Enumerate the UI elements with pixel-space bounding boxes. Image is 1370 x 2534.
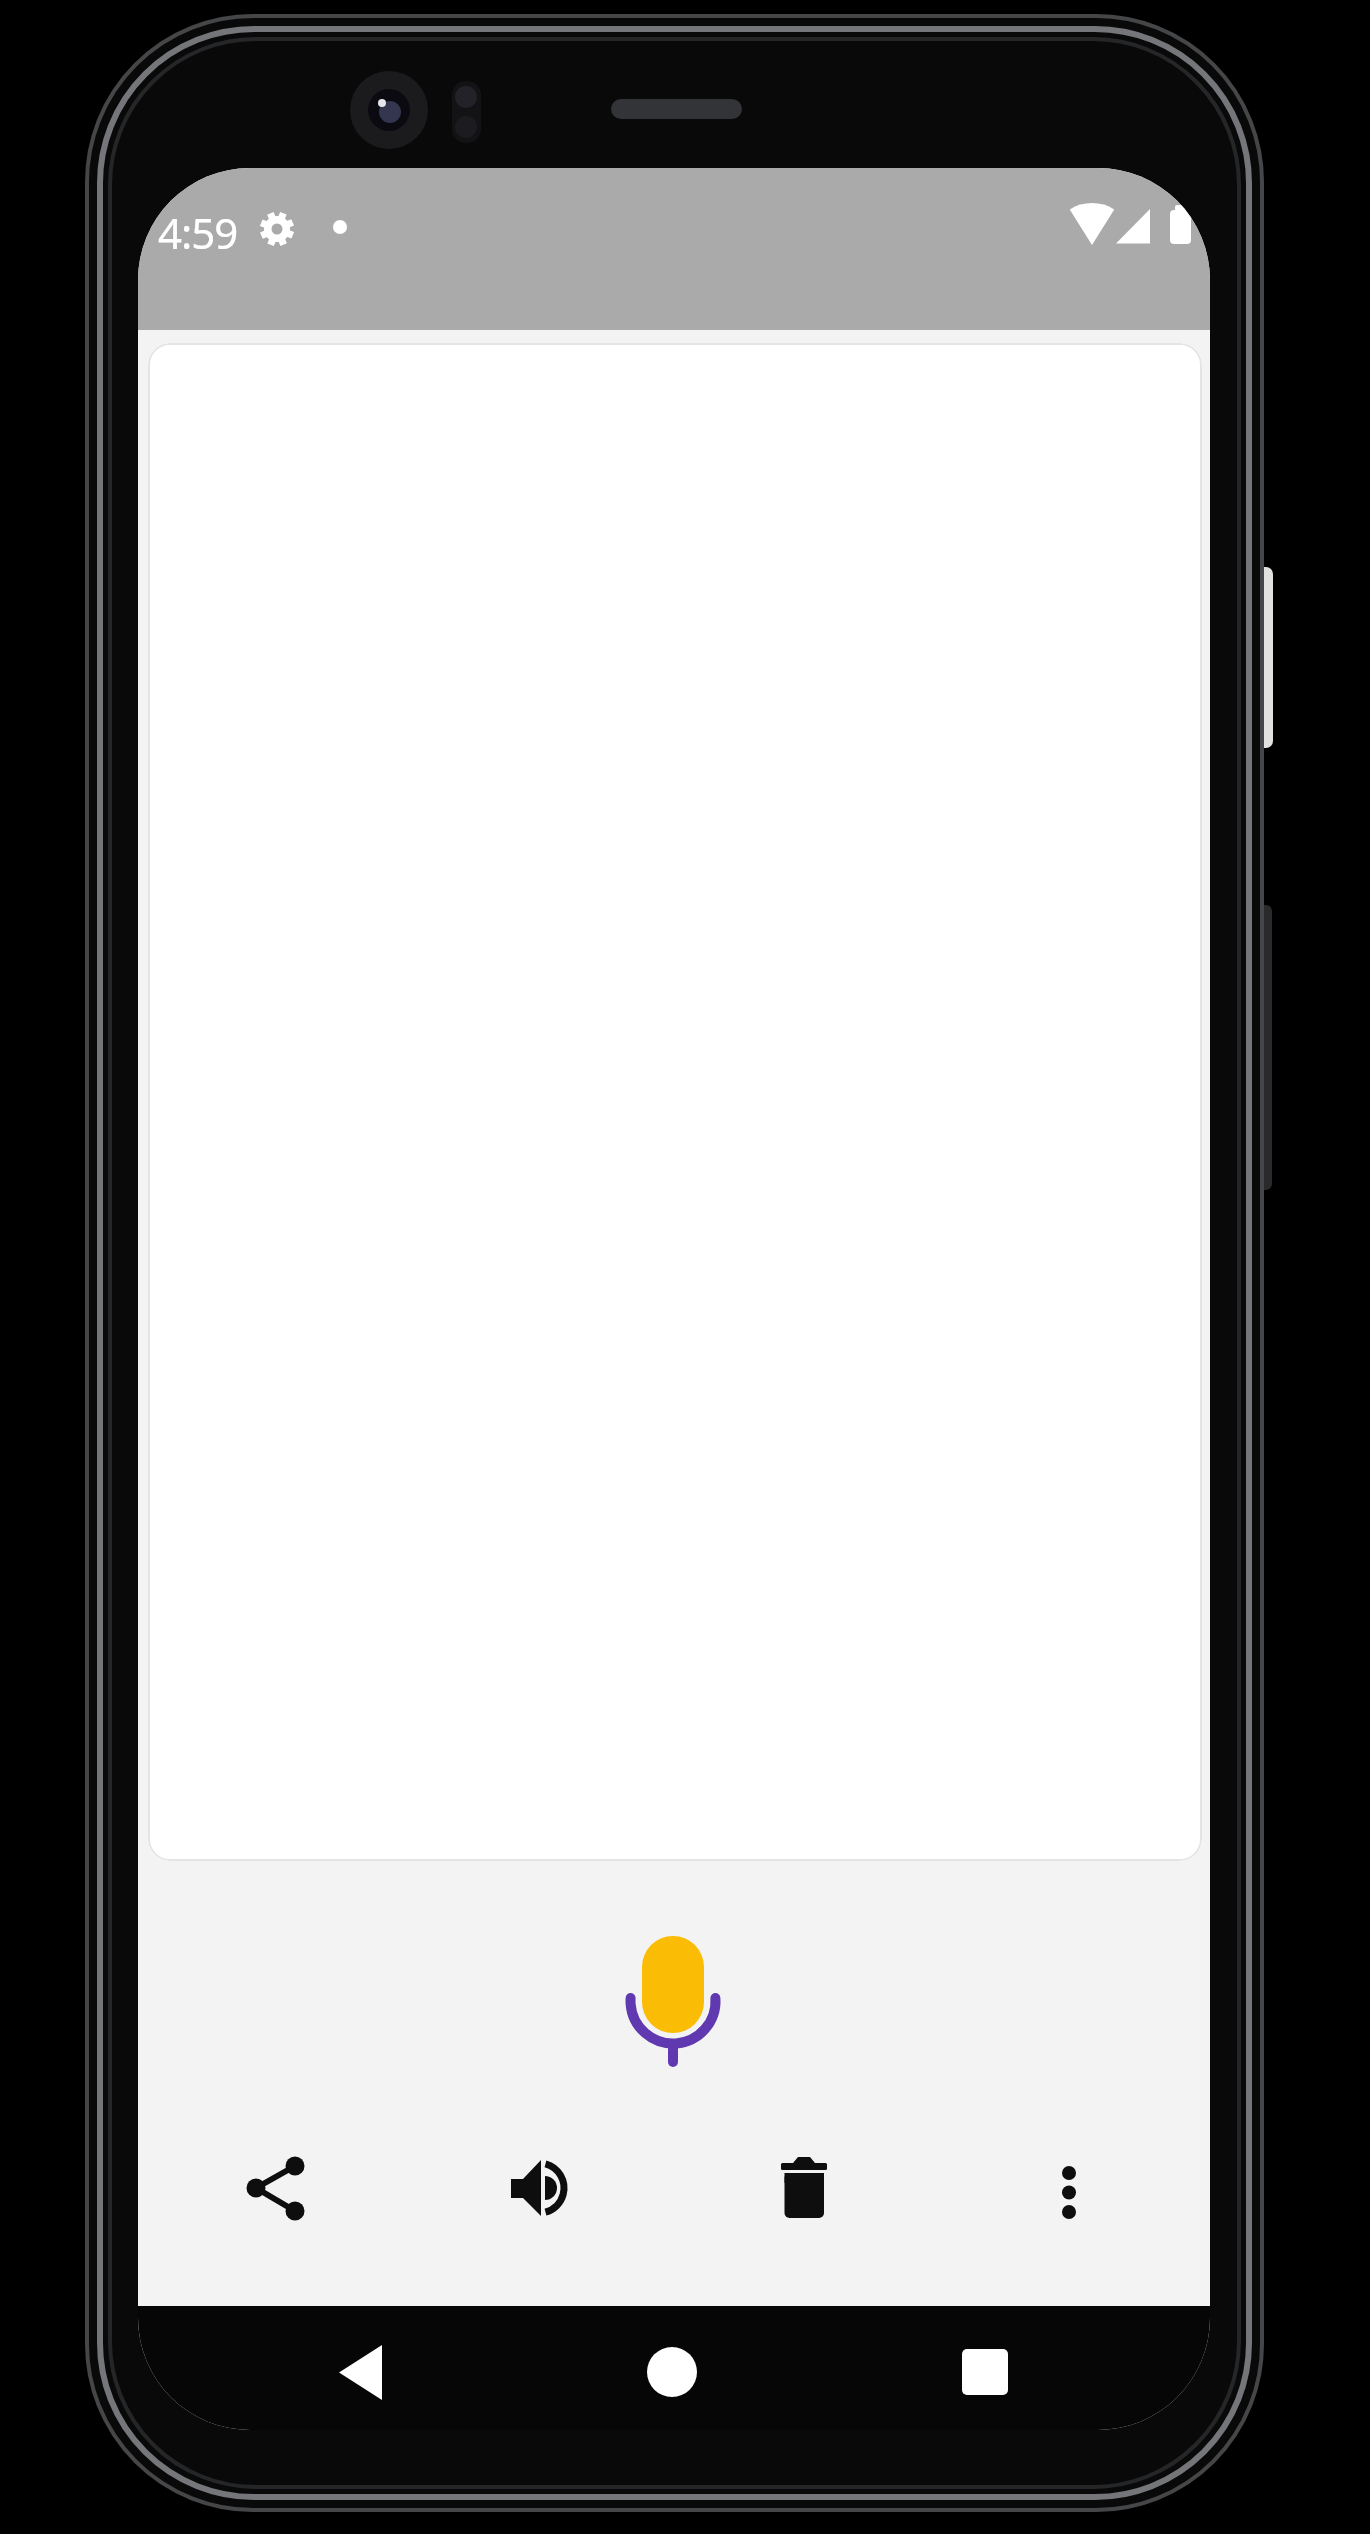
button[interactable] (618, 1928, 728, 2068)
button[interactable] (931, 2336, 1036, 2402)
button[interactable] (761, 2147, 851, 2237)
button[interactable] (1024, 2147, 1114, 2237)
button[interactable] (493, 2147, 583, 2237)
button[interactable] (308, 2336, 413, 2402)
button[interactable] (230, 2147, 320, 2237)
staticText: 4:59 (158, 204, 238, 261)
button[interactable] (619, 2336, 724, 2402)
